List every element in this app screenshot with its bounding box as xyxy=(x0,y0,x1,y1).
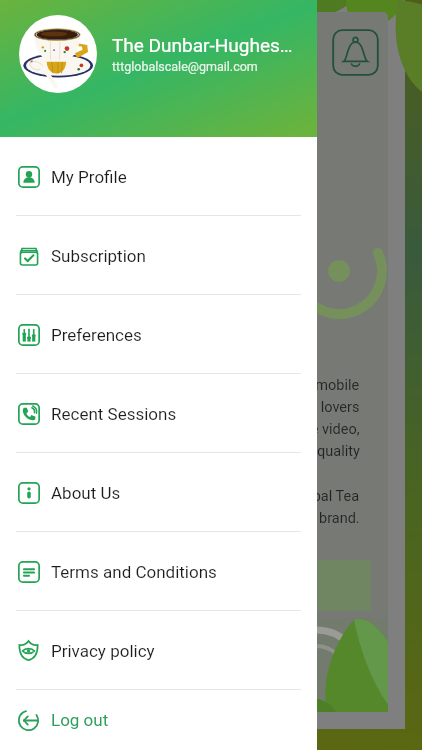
staticText: the quality xyxy=(293,443,360,460)
staticText: Preferences xyxy=(51,325,142,345)
staticText: Subscription xyxy=(51,246,146,266)
staticText: Enjoy mobile xyxy=(277,377,360,394)
staticText: the video, xyxy=(298,421,360,438)
staticText: My Profile xyxy=(51,167,127,187)
button[interactable]: Subscription xyxy=(0,216,317,295)
button[interactable]: Terms and Conditions xyxy=(0,532,317,611)
button[interactable]: Privacy policy xyxy=(0,611,317,690)
button[interactable]: Preferences xyxy=(0,295,317,374)
staticText: for tea lovers xyxy=(275,399,360,416)
button[interactable]: About Us xyxy=(0,453,317,532)
staticText: The Dunbar-Hughes… xyxy=(112,34,293,56)
staticText: brand. xyxy=(319,510,360,527)
staticText: Log out xyxy=(51,710,109,730)
staticText: Global Tea xyxy=(291,488,360,505)
button[interactable]: Recent Sessions xyxy=(0,374,317,453)
staticText: Privacy policy xyxy=(51,641,155,661)
staticText: About Us xyxy=(51,483,121,503)
button[interactable]: Log out xyxy=(0,690,317,750)
staticText: Recent Sessions xyxy=(51,404,177,424)
staticText: Terms and Conditions xyxy=(51,562,217,582)
button[interactable]: Notifications xyxy=(332,29,379,76)
staticText: tttglobalscale@gmail.com xyxy=(112,59,258,74)
button[interactable]: My Profile xyxy=(0,137,317,216)
